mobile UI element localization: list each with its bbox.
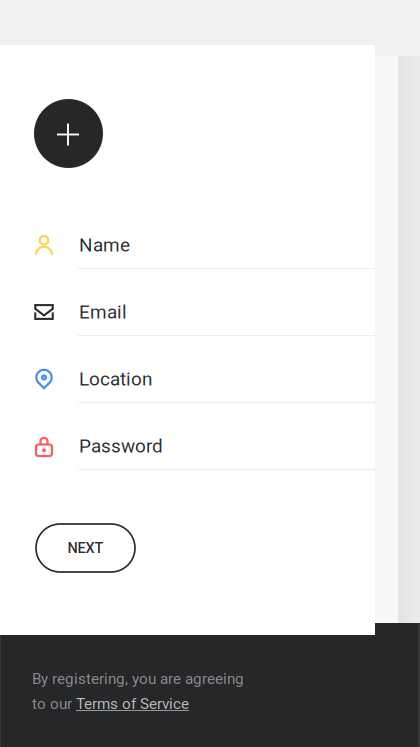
button[interactable]: Add photo xyxy=(34,99,103,168)
staticText: Email xyxy=(79,301,127,323)
staticText: Location xyxy=(79,368,152,390)
staticText: NEXT xyxy=(67,540,103,556)
staticText: Name xyxy=(79,234,130,256)
button[interactable]: to our xyxy=(32,695,189,713)
staticText: By registering, you are agreeing xyxy=(32,670,244,688)
button[interactable]: NEXT xyxy=(36,524,135,572)
staticText: Terms of Service xyxy=(76,695,189,713)
staticText: Password xyxy=(79,435,163,457)
staticText: to our xyxy=(32,695,76,713)
